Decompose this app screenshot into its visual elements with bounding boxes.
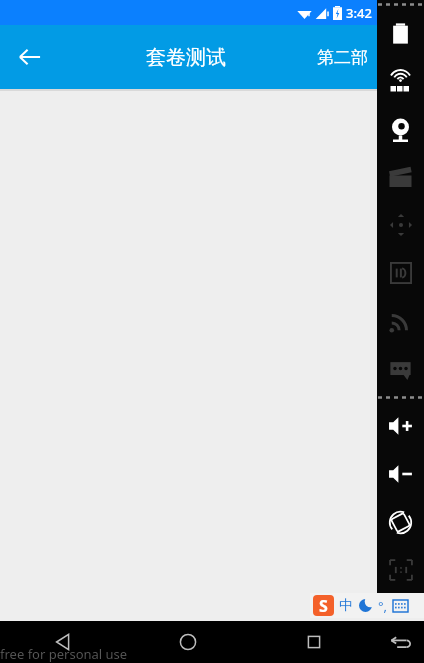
button[interactable]: ID (377, 249, 424, 297)
button[interactable]: Volume up (377, 402, 424, 450)
button[interactable]: Record video (377, 153, 424, 201)
button[interactable]: 第二部 (309, 37, 376, 78)
button[interactable]: Battery (377, 9, 424, 57)
button[interactable]: Volume down (377, 450, 424, 498)
button[interactable]: Rotate (377, 498, 424, 546)
button[interactable]: Actual size (377, 546, 424, 594)
button[interactable]: Move (377, 201, 424, 249)
staticText: free for personal use (0, 645, 128, 663)
button[interactable]: Back (0, 621, 125, 663)
button[interactable]: Home (125, 621, 251, 663)
button[interactable]: Signal (377, 297, 424, 345)
button[interactable]: Messages (377, 345, 424, 393)
staticText: °, (378, 597, 388, 615)
staticText: 3:42 (346, 4, 372, 22)
button[interactable]: Collapse toolbar (377, 621, 424, 663)
button[interactable]: Input method (310, 593, 424, 618)
staticText: 套卷测试 (146, 45, 226, 70)
button[interactable]: Back (6, 33, 54, 81)
staticText: S (319, 595, 328, 616)
staticText: 中 (339, 597, 353, 615)
button[interactable]: GPS (377, 57, 424, 105)
staticText: 第二部 (317, 47, 368, 68)
button[interactable]: Camera (377, 105, 424, 153)
button[interactable]: Recents (251, 621, 377, 663)
